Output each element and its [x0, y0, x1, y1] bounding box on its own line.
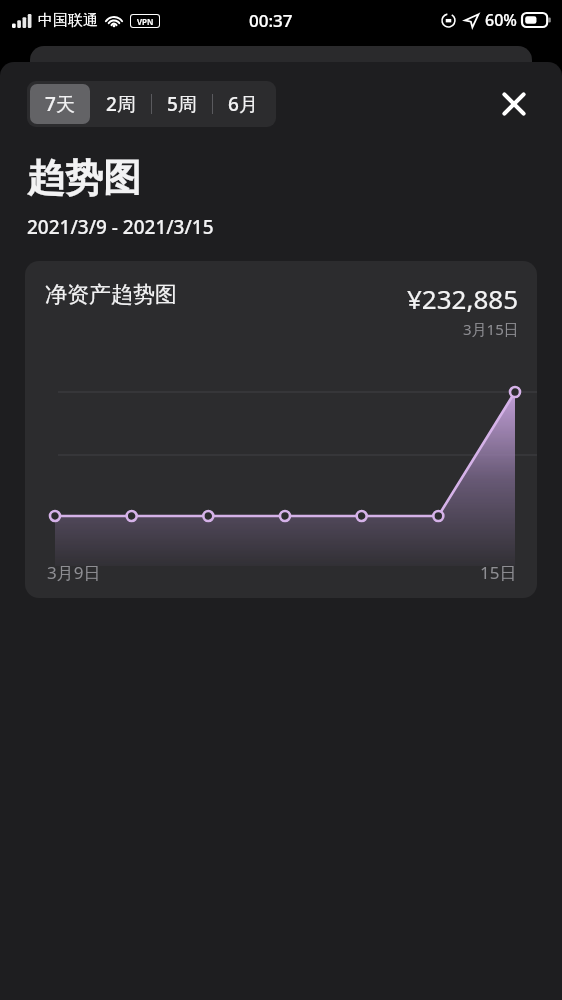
- staticText: 2周: [106, 91, 136, 117]
- staticText: 趋势图: [27, 154, 141, 202]
- staticText: VPN: [137, 16, 154, 27]
- staticText: 7天: [45, 91, 75, 117]
- button[interactable]: 5周: [152, 84, 212, 124]
- staticText: ¥232,885: [407, 281, 519, 316]
- staticText: 5周: [167, 91, 197, 117]
- staticText: 3月9日: [47, 561, 101, 584]
- staticText: 3月15日: [463, 319, 519, 339]
- button[interactable]: 7天: [30, 84, 90, 124]
- staticText: 15日: [480, 561, 517, 584]
- staticText: 6月: [228, 91, 258, 117]
- button[interactable]: Close: [492, 82, 536, 126]
- button[interactable]: 净资产趋势图: [25, 261, 537, 598]
- staticText: 中国联通: [38, 11, 98, 30]
- button[interactable]: 2周: [91, 84, 151, 124]
- staticText: 2021/3/9 - 2021/3/15: [27, 214, 214, 240]
- button[interactable]: 6月: [213, 84, 273, 124]
- staticText: 净资产趋势图: [45, 281, 177, 309]
- staticText: 00:37: [249, 9, 293, 32]
- staticText: 60%: [485, 9, 517, 31]
